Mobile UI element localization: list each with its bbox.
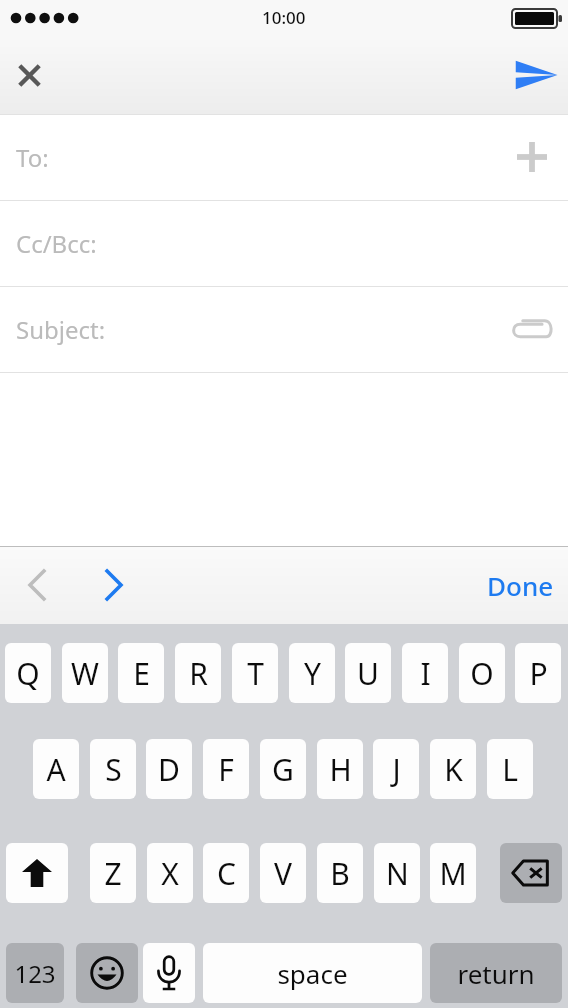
staticText: U	[357, 653, 379, 694]
button[interactable]: return	[430, 943, 562, 1003]
staticText: A	[46, 749, 66, 790]
staticText: 10:00	[262, 6, 306, 29]
button[interactable]: Shift	[6, 843, 68, 903]
staticText: O	[470, 653, 494, 694]
staticText: N	[386, 853, 409, 894]
button[interactable]: Done	[487, 568, 554, 603]
button[interactable]: J	[373, 739, 419, 799]
staticText: Subject:	[16, 313, 106, 346]
button[interactable]: W	[62, 643, 108, 703]
button[interactable]: M	[430, 843, 476, 903]
button[interactable]: Backspace	[500, 843, 562, 903]
button[interactable]: V	[260, 843, 306, 903]
button[interactable]: Previous field	[10, 552, 66, 618]
button[interactable]: B	[317, 843, 363, 903]
button[interactable]: U	[345, 643, 391, 703]
staticText: K	[444, 749, 463, 790]
staticText: C	[217, 853, 236, 894]
button[interactable]: Q	[5, 643, 51, 703]
button[interactable]: Close	[0, 46, 58, 104]
staticText: M	[439, 853, 467, 894]
staticText: Cc/Bcc:	[16, 227, 97, 260]
button[interactable]: Attach file	[502, 299, 562, 359]
staticText: J	[392, 749, 401, 790]
staticText: L	[502, 749, 518, 790]
button[interactable]: Next field	[85, 552, 141, 618]
staticText: V	[274, 853, 292, 894]
staticText: E	[133, 653, 150, 694]
button[interactable]: S	[90, 739, 136, 799]
staticText: X	[161, 853, 179, 894]
button[interactable]: G	[260, 739, 306, 799]
button[interactable]: Cc/Bcc:	[0, 200, 568, 286]
button[interactable]: Send	[504, 46, 568, 104]
button[interactable]: R	[175, 643, 221, 703]
button[interactable]: I	[402, 643, 448, 703]
button[interactable]: Add contact	[502, 127, 562, 187]
button[interactable]: Z	[90, 843, 136, 903]
button[interactable]: L	[487, 739, 533, 799]
staticText: Q	[16, 653, 40, 694]
staticText: G	[272, 749, 294, 790]
staticText: To:	[16, 141, 49, 174]
button[interactable]: 123	[6, 943, 64, 1003]
button[interactable]: C	[203, 843, 249, 903]
staticText: F	[218, 749, 234, 790]
button[interactable]: T	[232, 643, 278, 703]
staticText: B	[330, 853, 350, 894]
staticText: R	[189, 653, 208, 694]
button[interactable]: H	[317, 739, 363, 799]
button[interactable]: space	[203, 943, 422, 1003]
staticText: space	[277, 956, 348, 991]
button[interactable]: F	[203, 739, 249, 799]
button[interactable]: X	[147, 843, 193, 903]
staticText: T	[247, 653, 264, 694]
button[interactable]: N	[374, 843, 420, 903]
button[interactable]: A	[33, 739, 79, 799]
staticText: Y	[304, 653, 321, 694]
staticText: return	[457, 956, 535, 991]
staticText: Done	[487, 568, 554, 603]
button[interactable]: D	[146, 739, 192, 799]
button[interactable]: Subject:	[0, 286, 568, 372]
staticText: H	[329, 749, 352, 790]
staticText: W	[71, 653, 99, 694]
button[interactable]: Dictate	[143, 943, 195, 1003]
staticText: I	[420, 653, 431, 694]
button[interactable]: P	[515, 643, 561, 703]
button[interactable]: Y	[289, 643, 335, 703]
button[interactable]: E	[118, 643, 164, 703]
staticText: P	[529, 653, 548, 694]
button[interactable]: O	[459, 643, 505, 703]
staticText: Z	[104, 853, 122, 894]
button[interactable]: K	[430, 739, 476, 799]
staticText: S	[105, 749, 122, 790]
staticText: 123	[14, 957, 56, 990]
button[interactable]: To:	[0, 114, 568, 200]
staticText: D	[158, 749, 180, 790]
button[interactable]: Emoji	[76, 943, 138, 1003]
